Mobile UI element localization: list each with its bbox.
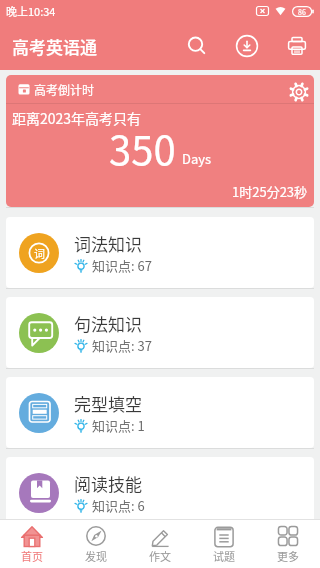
- button[interactable]: [235, 34, 259, 58]
- button[interactable]: [285, 34, 309, 58]
- staticText: 高考倒计时: [34, 81, 95, 98]
- staticText: 发现: [85, 548, 107, 564]
- staticText: 86: [298, 7, 306, 17]
- staticText: 知识点: 1: [92, 416, 145, 435]
- staticText: 知识点: 6: [92, 496, 145, 515]
- staticText: 1时25分23秒: [232, 182, 308, 201]
- staticText: 词法知识: [74, 231, 142, 256]
- staticText: Days: [182, 149, 212, 168]
- staticText: 词: [34, 245, 45, 261]
- staticText: 知识点: 37: [92, 336, 152, 355]
- button[interactable]: 词: [6, 217, 314, 288]
- staticText: 350: [109, 119, 176, 177]
- button[interactable]: 阅读技能: [6, 457, 314, 528]
- button[interactable]: 首页: [0, 520, 64, 568]
- staticText: 完型填空: [74, 391, 142, 416]
- staticText: 晚上10:34: [6, 3, 56, 19]
- button[interactable]: 发现: [64, 520, 128, 568]
- staticText: 更多: [277, 548, 299, 564]
- button[interactable]: 高考倒计时: [6, 75, 314, 207]
- staticText: 作文: [149, 548, 171, 564]
- button[interactable]: 更多: [256, 520, 320, 568]
- button[interactable]: 句法知识: [6, 297, 314, 368]
- staticText: 首页: [21, 548, 43, 564]
- staticText: 试题: [213, 548, 235, 564]
- button[interactable]: 试题: [192, 520, 256, 568]
- button[interactable]: 完型填空: [6, 377, 314, 448]
- button[interactable]: 作文: [128, 520, 192, 568]
- staticText: 阅读技能: [74, 471, 142, 496]
- staticText: 知识点: 67: [92, 256, 152, 275]
- staticText: 高考英语通: [12, 34, 97, 59]
- button[interactable]: [289, 82, 309, 102]
- staticText: 距离2023年高考只有: [12, 108, 142, 128]
- staticText: 句法知识: [74, 311, 142, 336]
- button[interactable]: [185, 34, 209, 58]
